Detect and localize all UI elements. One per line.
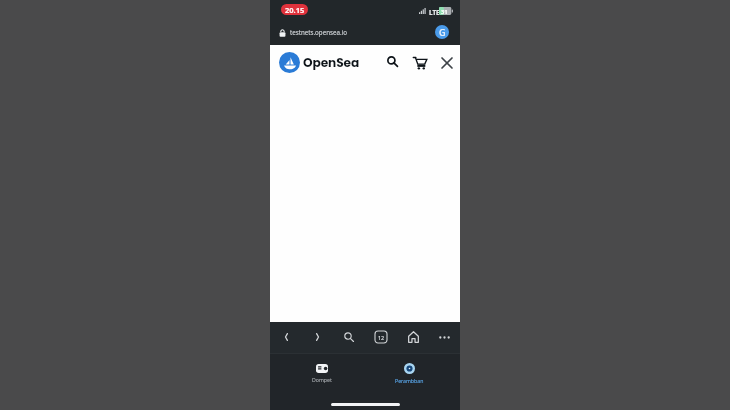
button[interactable]: Shopping cart (409, 52, 431, 74)
staticText: testnets.opensea.io (290, 28, 347, 36)
button[interactable]: Perambban (379, 363, 439, 393)
staticText: 20.15 (285, 5, 305, 15)
button[interactable]: Home (402, 326, 424, 348)
button[interactable]: OpenSea (276, 49, 360, 76)
staticText: G (439, 26, 446, 38)
button[interactable]: Forward (306, 326, 328, 348)
button[interactable]: Dompet (292, 364, 352, 394)
button[interactable]: Search (338, 326, 360, 348)
staticText: OpenSea (303, 54, 360, 71)
staticText: 31 (441, 8, 448, 16)
staticText: Dompet (312, 376, 332, 383)
button[interactable]: testnets.opensea.io (274, 22, 429, 42)
staticText: LTE (429, 8, 440, 17)
staticText: Perambban (395, 377, 424, 384)
button[interactable]: Search (381, 50, 403, 72)
button[interactable]: Account (435, 25, 449, 39)
button[interactable]: More options (433, 326, 455, 348)
button[interactable]: Back (275, 326, 297, 348)
button[interactable]: Close (436, 52, 458, 74)
button[interactable]: Tabs (370, 326, 392, 348)
staticText: 12 (378, 334, 385, 341)
